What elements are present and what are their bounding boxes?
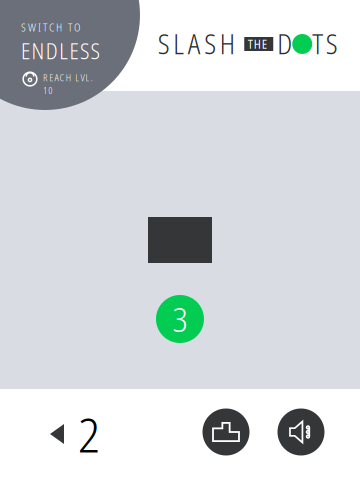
staticText: D <box>277 26 292 62</box>
button[interactable]: SWITCH TO <box>0 0 140 112</box>
staticText: SLASH <box>158 26 244 62</box>
staticText: TS <box>312 26 346 62</box>
staticText: ENDLESS <box>21 36 105 66</box>
button[interactable]: Sound <box>277 408 324 455</box>
staticText: THE <box>248 36 270 52</box>
staticText: 3 <box>172 296 187 342</box>
staticText: 2 <box>78 401 100 467</box>
staticText: REACH LVL. 10 <box>43 71 113 84</box>
button[interactable]: 2 <box>50 401 100 467</box>
button[interactable]: Leaderboard <box>202 408 249 455</box>
staticText: SWITCH TO <box>21 20 84 34</box>
